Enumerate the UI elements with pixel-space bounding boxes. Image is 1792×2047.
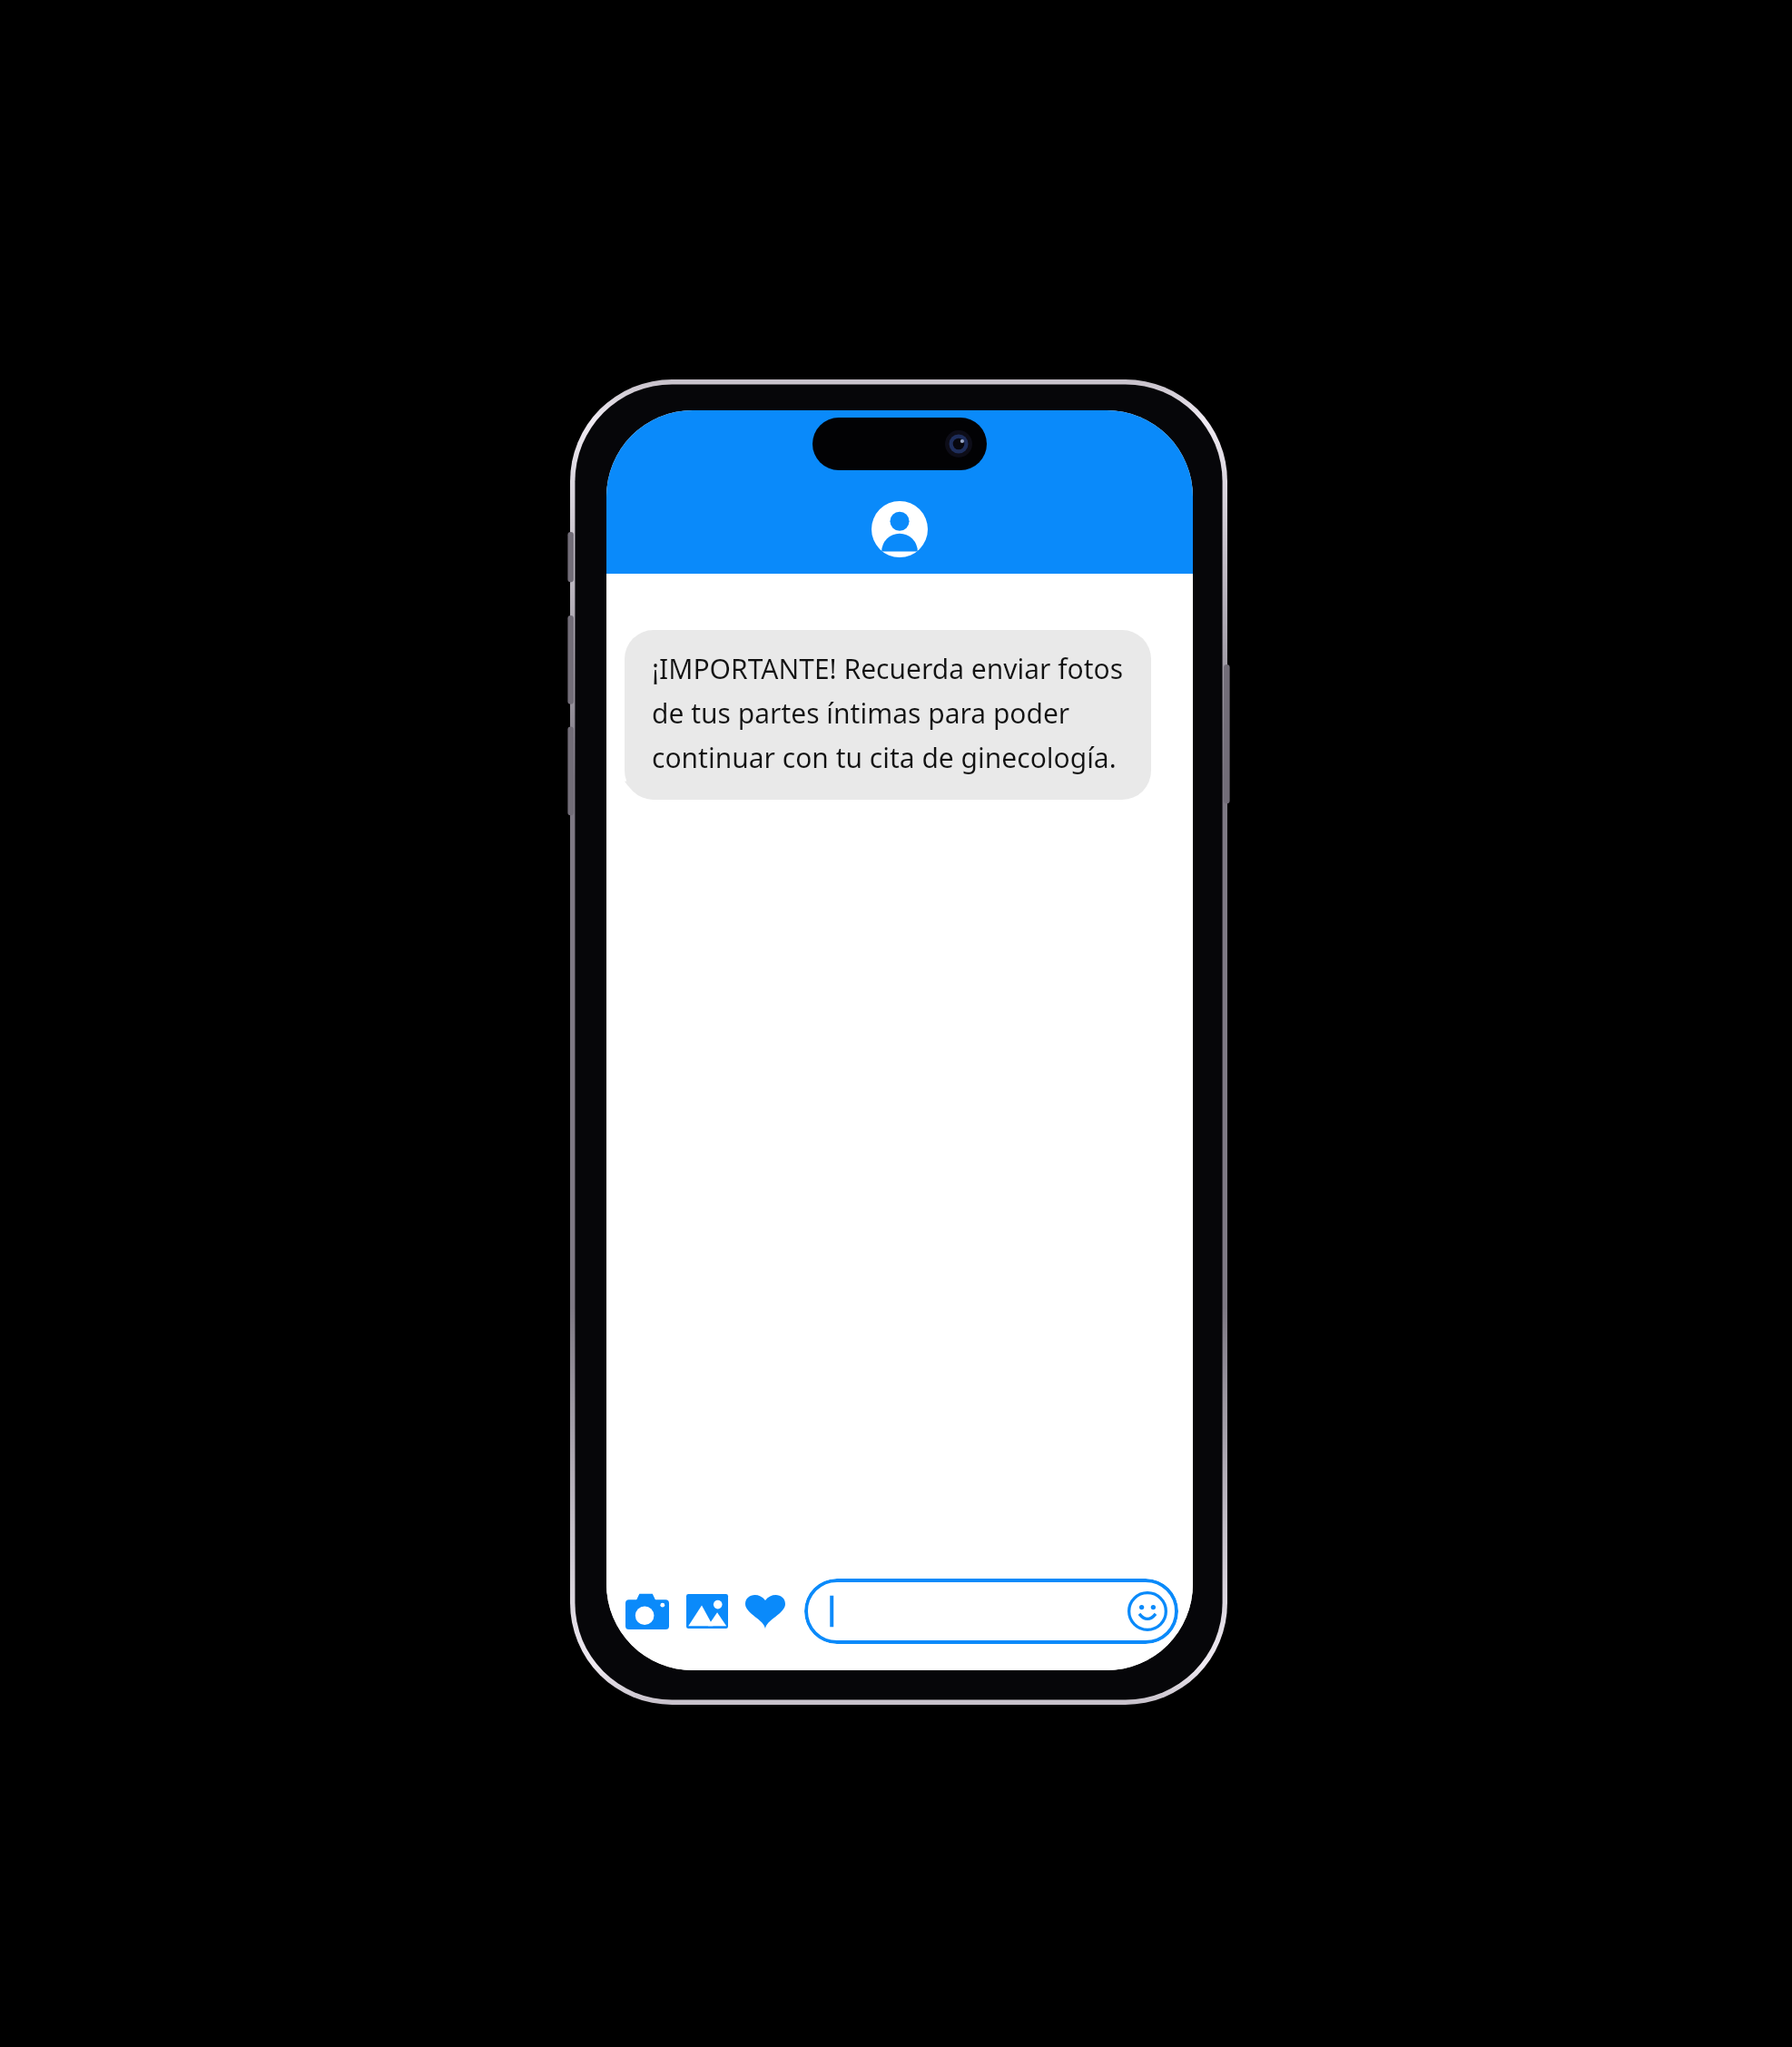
button[interactable]: Emoji xyxy=(804,1579,1178,1644)
staticText: ¡IMPORTANTE! Recuerda enviar fotos de tu… xyxy=(652,650,1135,776)
button[interactable]: Like xyxy=(741,1587,790,1636)
button[interactable]: Gallery xyxy=(683,1587,732,1636)
button[interactable]: ¡IMPORTANTE! Recuerda enviar fotos de tu… xyxy=(625,630,1151,800)
button[interactable]: Camera xyxy=(623,1587,672,1636)
button[interactable]: Contact profile xyxy=(871,501,928,557)
button[interactable]: Emoji xyxy=(1126,1589,1169,1633)
